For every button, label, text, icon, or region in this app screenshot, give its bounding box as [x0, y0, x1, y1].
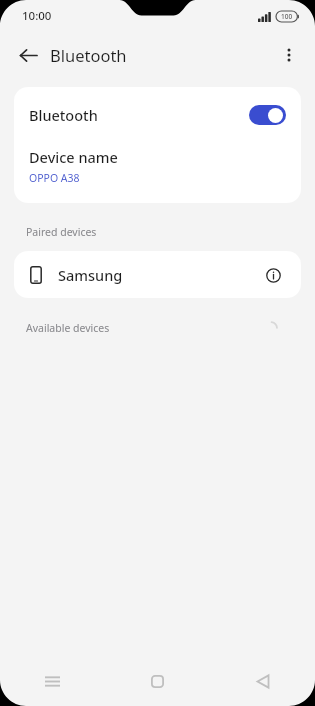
- staticText: OPPO A38: [29, 171, 80, 185]
- staticText: Bluetooth: [29, 105, 98, 125]
- staticText: Bluetooth: [50, 44, 127, 66]
- button[interactable]: Bluetooth: [14, 87, 301, 143]
- button[interactable]: Samsung: [14, 251, 301, 298]
- staticText: Device name: [29, 147, 118, 167]
- staticText: 10:00: [22, 8, 52, 24]
- button[interactable]: Back: [10, 37, 46, 73]
- staticText: 100: [281, 12, 293, 21]
- button[interactable]: Home: [105, 662, 210, 700]
- button[interactable]: Device name: [14, 143, 301, 203]
- button[interactable]: Back: [210, 662, 315, 700]
- staticText: Paired devices: [26, 225, 97, 239]
- button[interactable]: Device details: [259, 261, 287, 289]
- button[interactable]: Recent apps: [0, 662, 105, 700]
- button[interactable]: Bluetooth toggle: [249, 105, 286, 125]
- staticText: Available devices: [26, 321, 110, 335]
- staticText: Samsung: [58, 265, 123, 285]
- button[interactable]: More options: [271, 37, 307, 73]
